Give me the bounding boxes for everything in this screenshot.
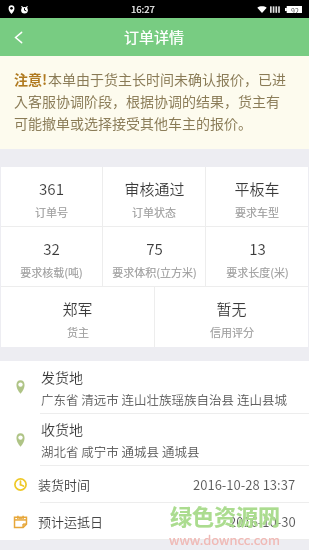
staticText: 绿色资源网	[170, 499, 281, 531]
staticText: 收货地	[41, 419, 83, 439]
staticText: 审核通过	[124, 178, 185, 200]
staticText: 预计运抵日	[38, 512, 104, 531]
staticText: 订单详情	[124, 26, 185, 48]
staticText: 要求体积(立方米)	[112, 264, 197, 280]
button[interactable]: 预计运抵日	[0, 503, 309, 539]
staticText: 湖北省 咸宁市 通城县 通城县	[41, 442, 200, 460]
staticText: 92	[291, 6, 299, 13]
staticText: 注意!	[14, 69, 48, 89]
staticText: 要求车型	[235, 204, 279, 220]
staticText: 16:27	[131, 2, 155, 16]
staticText: 订单状态	[132, 204, 176, 220]
staticText: 可能撤单或选择接受其他车主的报价。	[14, 113, 252, 133]
staticText: 郑军	[62, 298, 93, 320]
staticText: 13	[249, 238, 266, 260]
staticText: 装货时间	[38, 475, 91, 494]
staticText: 75	[146, 238, 163, 260]
staticText: 订单号	[35, 204, 68, 220]
staticText: 本单由于货主长时间未确认报价，已进	[48, 69, 286, 89]
staticText: 要求核载(吨)	[20, 264, 83, 280]
staticText: 32	[43, 238, 60, 260]
staticText: 广东省 清远市 连山壮族瑶族自治县 连山县城	[41, 390, 287, 408]
staticText: 暂无	[216, 298, 247, 320]
staticText: 361	[39, 178, 64, 200]
button[interactable]: 装货时间	[0, 466, 309, 502]
button[interactable]: Back	[0, 18, 38, 56]
staticText: 信用评分	[210, 324, 254, 340]
button[interactable]: 收货地	[0, 414, 309, 465]
staticText: 2016-10-30	[229, 512, 296, 531]
button[interactable]: 发货地	[0, 361, 309, 413]
staticText: 货主	[67, 324, 89, 340]
staticText: www.downcc.com	[169, 530, 281, 549]
staticText: 入客服协调阶段，根据协调的结果，货主有	[14, 91, 280, 111]
staticText: 发货地	[41, 367, 83, 387]
staticText: 要求长度(米)	[226, 264, 289, 280]
staticText: 平板车	[234, 178, 280, 200]
staticText: 2016-10-28 13:37	[193, 475, 296, 494]
